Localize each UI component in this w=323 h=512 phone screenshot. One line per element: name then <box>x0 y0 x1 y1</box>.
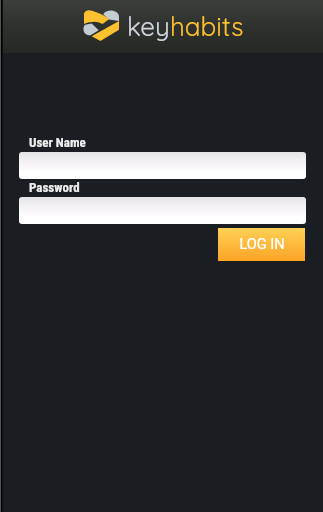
button[interactable]: LOG IN <box>218 228 305 261</box>
staticText: Password <box>29 180 80 195</box>
button[interactable] <box>19 197 306 224</box>
other: keyhabits logo <box>84 10 119 42</box>
staticText: key <box>127 10 170 43</box>
staticText: LOG IN <box>239 236 285 253</box>
staticText: User Name <box>29 135 86 150</box>
button[interactable] <box>19 152 306 179</box>
staticText: habits <box>170 10 244 43</box>
